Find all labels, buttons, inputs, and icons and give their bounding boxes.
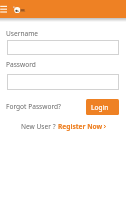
- button[interactable]: Forgot Password?: [6, 102, 61, 111]
- button[interactable]: Open navigation menu: [0, 2, 10, 15]
- button[interactable]: [7, 40, 119, 55]
- button[interactable]: [7, 74, 119, 90]
- staticText: Forgot Password?: [6, 102, 61, 111]
- staticText: Register Now: [58, 122, 103, 131]
- staticText: New User ?: [21, 122, 56, 131]
- button[interactable]: Login: [86, 99, 119, 115]
- staticText: Password: [6, 60, 36, 69]
- staticText: Username: [6, 29, 39, 38]
- button[interactable]: Register Now: [58, 122, 107, 131]
- button[interactable]: Home: [12, 2, 30, 15]
- staticText: Login: [91, 103, 109, 112]
